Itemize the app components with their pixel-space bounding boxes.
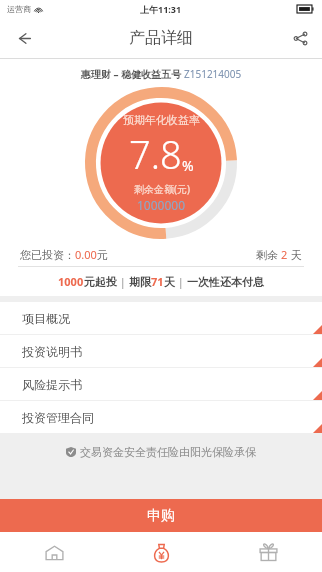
button[interactable]: Home: [0, 532, 108, 572]
staticText: 天: [288, 247, 302, 262]
staticText: 71: [151, 274, 164, 289]
staticText: |: [117, 274, 129, 289]
button[interactable]: 投资管理合同: [0, 401, 322, 433]
staticText: 预期年化收益率: [123, 113, 200, 127]
staticText: 2: [281, 247, 288, 262]
staticText: 交易资金安全责任险由阳光保险承保: [80, 445, 256, 459]
staticText: 项目概况: [22, 311, 70, 326]
staticText: 运营商: [7, 4, 31, 14]
staticText: 产品详细: [129, 28, 193, 48]
staticText: 风险提示书: [22, 377, 82, 392]
staticText: 期限: [129, 275, 151, 289]
staticText: Z151214005: [184, 67, 242, 81]
staticText: |: [175, 274, 187, 289]
staticText: 1000: [58, 274, 84, 289]
staticText: 元: [97, 248, 108, 262]
staticText: 投资管理合同: [22, 410, 94, 425]
staticText: 1000000: [137, 197, 186, 213]
staticText: 惠理财 – 稳健收益五号: [81, 67, 184, 81]
staticText: 您已投资：: [20, 248, 75, 262]
staticText: 投资说明书: [22, 344, 82, 359]
button[interactable]: 申购: [0, 499, 322, 532]
staticText: 元起投: [84, 275, 117, 289]
button[interactable]: Back: [0, 18, 46, 58]
button[interactable]: 风险提示书: [0, 368, 322, 400]
button[interactable]: Invest: [108, 532, 215, 572]
staticText: 剩余: [256, 247, 281, 262]
staticText: 申购: [147, 507, 175, 525]
staticText: 天: [164, 275, 175, 289]
staticText: 0.00: [75, 247, 97, 262]
staticText: 7.8: [129, 128, 182, 180]
staticText: 一次性还本付息: [187, 275, 264, 289]
staticText: %: [182, 156, 194, 175]
button[interactable]: Share: [278, 18, 322, 58]
staticText: 剩余金额(元): [134, 182, 190, 196]
button[interactable]: Gifts: [215, 532, 322, 572]
button[interactable]: 投资说明书: [0, 335, 322, 367]
button[interactable]: 项目概况: [0, 302, 322, 334]
staticText: 上午11:31: [140, 3, 182, 15]
